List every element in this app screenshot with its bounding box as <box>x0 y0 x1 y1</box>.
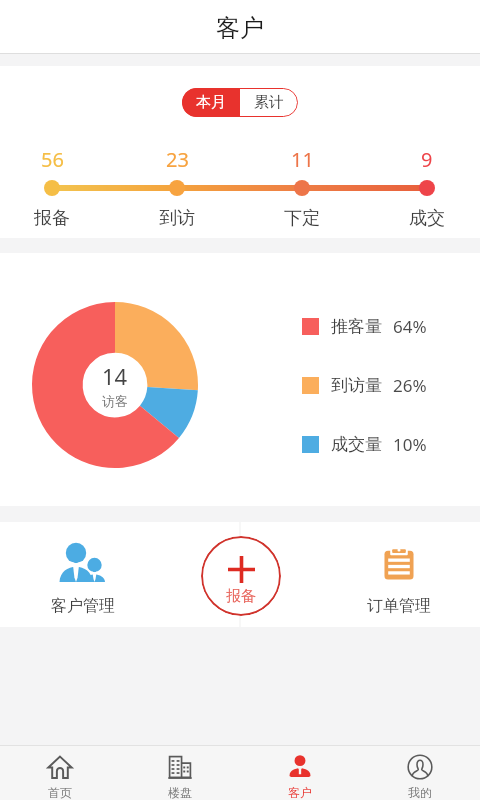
staticText: 推客量 <box>331 316 382 337</box>
button[interactable]: 报备 <box>201 536 281 616</box>
staticText: 到访 <box>159 207 195 230</box>
button[interactable]: 我的 <box>360 746 480 800</box>
staticText: 楼盘 <box>168 785 192 800</box>
staticText: 64% <box>393 315 427 337</box>
button[interactable]: 楼盘 <box>120 746 240 800</box>
staticText: 9 <box>421 146 433 173</box>
staticText: 客户管理 <box>51 596 115 616</box>
staticText: 客户 <box>288 785 312 800</box>
staticText: 访客 <box>102 393 128 409</box>
staticText: 首页 <box>48 785 72 800</box>
staticText: 56 <box>41 146 64 173</box>
staticText: 成交 <box>409 207 445 230</box>
staticText: 我的 <box>408 785 432 800</box>
button[interactable]: 客户 <box>240 746 360 800</box>
staticText: 23 <box>166 146 189 173</box>
staticText: 10% <box>393 433 427 455</box>
button[interactable]: 累计 <box>240 88 298 117</box>
button[interactable]: 客户管理 <box>33 542 133 616</box>
staticText: 11 <box>291 146 314 173</box>
staticText: 客户 <box>216 13 264 43</box>
staticText: 订单管理 <box>367 596 431 616</box>
staticText: 26% <box>393 374 427 396</box>
button[interactable]: 订单管理 <box>349 542 449 616</box>
staticText: 到访量 <box>331 375 382 396</box>
staticText: 成交量 <box>331 434 382 455</box>
button[interactable]: 本月 <box>182 88 240 117</box>
staticText: 报备 <box>34 207 70 230</box>
staticText: 累计 <box>254 93 284 112</box>
button[interactable]: 首页 <box>0 746 120 800</box>
staticText: 下定 <box>284 207 320 230</box>
staticText: 14 <box>102 361 128 391</box>
staticText: 本月 <box>196 93 226 112</box>
staticText: 报备 <box>226 587 256 606</box>
